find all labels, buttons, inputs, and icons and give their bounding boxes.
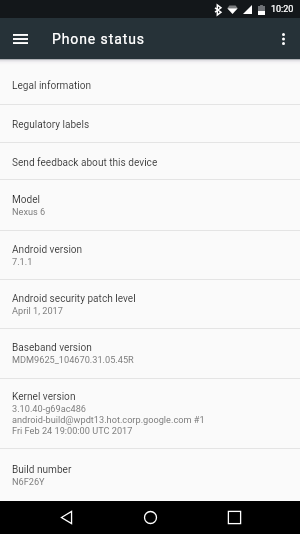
staticText: 7.1.1: [12, 256, 33, 267]
staticText: Fri Feb 24 19:00:00 UTC 2017: [12, 425, 133, 436]
staticText: 3.10.40-g69ac486: [12, 403, 86, 414]
button[interactable]: Android version: [0, 231, 300, 279]
button[interactable]: Legal information: [0, 65, 300, 104]
staticText: Phone status: [52, 31, 145, 47]
staticText: Legal information: [12, 80, 92, 92]
staticText: 10:20: [271, 4, 294, 15]
staticText: April 1, 2017: [12, 305, 63, 316]
staticText: Baseband version: [12, 342, 92, 354]
staticText: Build number: [12, 464, 72, 476]
staticText: Model: [12, 194, 41, 206]
button[interactable]: Kernel version: [0, 379, 300, 448]
button[interactable]: Baseband version: [0, 329, 300, 378]
staticText: N6F26Y: [12, 476, 45, 487]
staticText: Android version: [12, 244, 83, 256]
button[interactable]: Regulatory labels: [0, 105, 300, 142]
staticText: android-build@wpdt13.hot.corp.google.com…: [12, 414, 205, 425]
staticText: Regulatory labels: [12, 119, 90, 131]
button[interactable]: Home: [108, 501, 192, 534]
button[interactable]: Send feedback about this device: [0, 143, 300, 179]
button[interactable]: Build number: [0, 449, 300, 501]
button[interactable]: Back: [24, 501, 108, 534]
staticText: Nexus 6: [12, 206, 46, 217]
staticText: Send feedback about this device: [12, 157, 158, 169]
button[interactable]: More options: [266, 22, 300, 56]
button[interactable]: Open navigation drawer: [3, 22, 37, 56]
staticText: Android security patch level: [12, 293, 136, 305]
staticText: MDM9625_104670.31.05.45R: [12, 354, 134, 365]
button[interactable]: Recent apps: [192, 501, 276, 534]
button[interactable]: Android security patch level: [0, 280, 300, 328]
button[interactable]: Model: [0, 180, 300, 230]
staticText: Kernel version: [12, 391, 76, 403]
